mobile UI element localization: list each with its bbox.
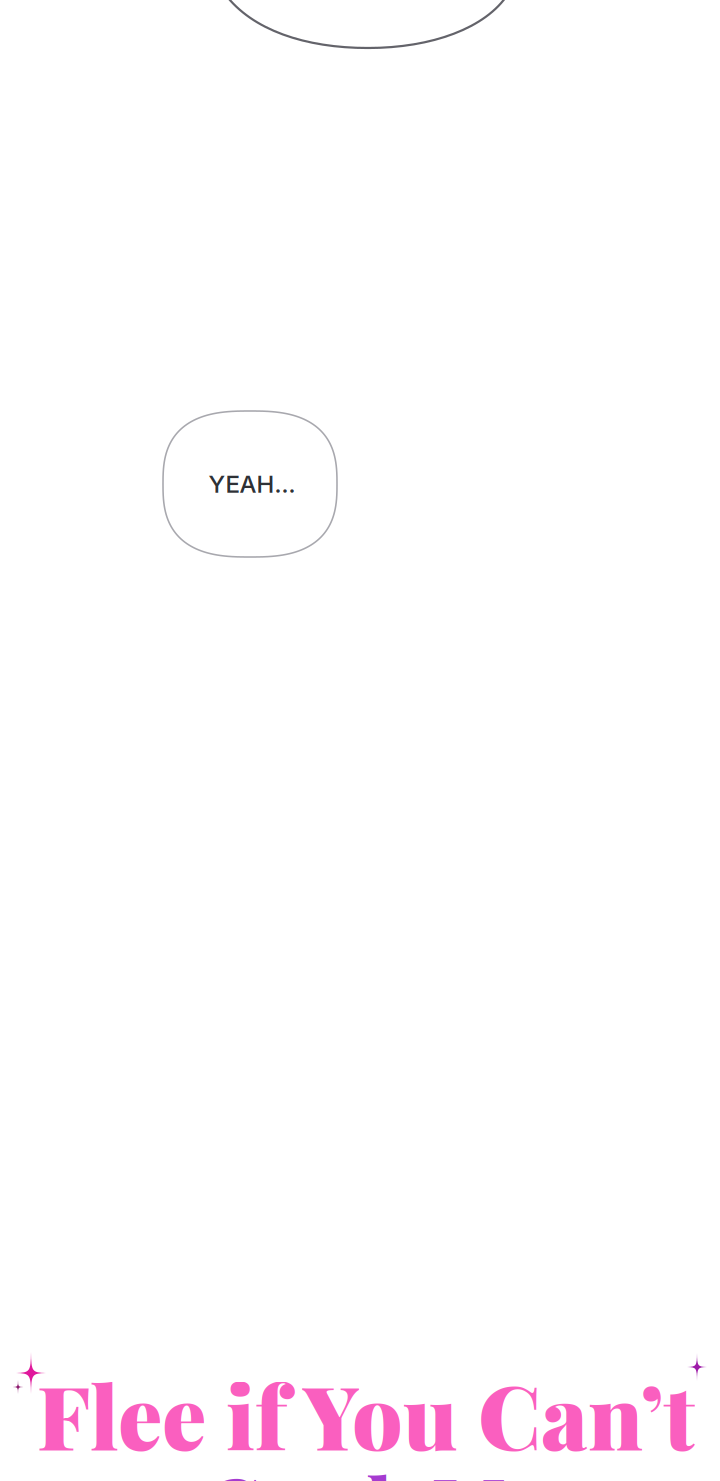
button[interactable]: Comic page, tap to show reader controls [0, 0, 720, 1481]
staticText: YEAH... [208, 469, 295, 498]
staticText: Flee if You Can’t [37, 1355, 695, 1473]
staticText: Catch Me [204, 1450, 543, 1481]
